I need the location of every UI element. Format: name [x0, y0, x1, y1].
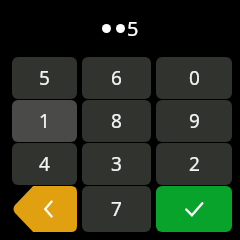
button[interactable]: 2 — [156, 143, 232, 185]
staticText: 5 — [127, 15, 139, 42]
staticText: 5 — [39, 65, 50, 91]
staticText: 6 — [111, 65, 122, 91]
button[interactable]: 1 — [12, 100, 77, 142]
staticText: 7 — [111, 196, 122, 222]
button[interactable]: 3 — [82, 143, 151, 185]
button[interactable]: Confirm — [156, 186, 232, 232]
staticText: 4 — [39, 151, 50, 177]
button[interactable]: 7 — [82, 186, 151, 232]
staticText: 8 — [111, 108, 122, 134]
staticText: 3 — [111, 151, 122, 177]
staticText: 9 — [189, 108, 200, 134]
button[interactable]: 9 — [156, 100, 232, 142]
button[interactable]: 8 — [82, 100, 151, 142]
button[interactable]: Backspace — [12, 186, 77, 232]
staticText: 0 — [189, 65, 200, 91]
button[interactable]: 0 — [156, 57, 232, 99]
button[interactable]: 5 — [12, 57, 77, 99]
staticText: 1 — [39, 108, 50, 134]
button[interactable]: 4 — [12, 143, 77, 185]
staticText: 2 — [189, 151, 200, 177]
button[interactable]: 6 — [82, 57, 151, 99]
